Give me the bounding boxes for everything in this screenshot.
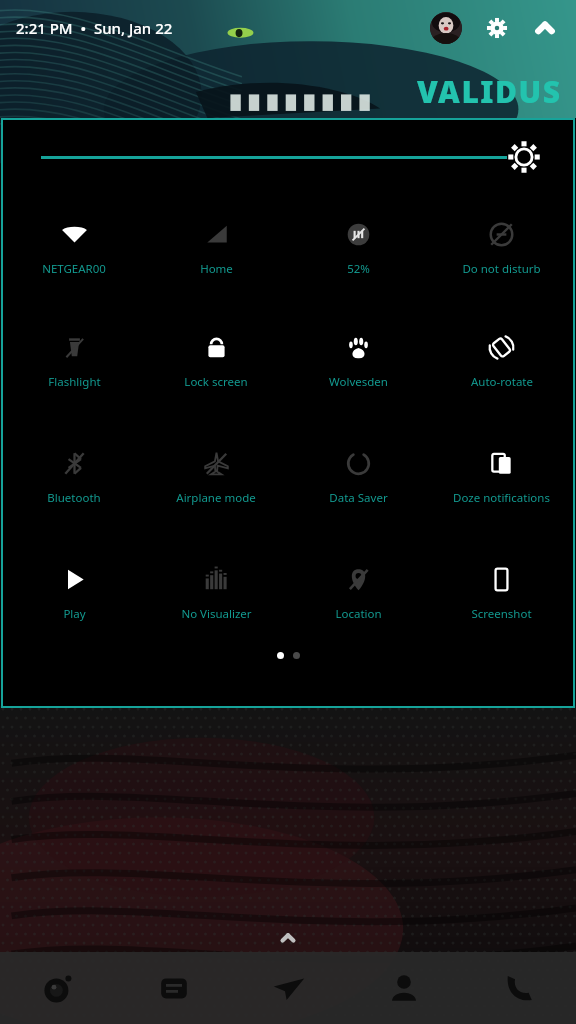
staticText: VALIDUS [417, 71, 562, 112]
button[interactable]: Bluetooth [3, 420, 145, 536]
button[interactable]: Airplane mode [145, 420, 287, 536]
staticText: Doze notifications [453, 490, 550, 506]
button[interactable]: Camera [0, 952, 116, 1024]
button[interactable]: Play [3, 536, 145, 652]
button[interactable]: 52% [287, 194, 430, 304]
staticText: Location [335, 606, 382, 622]
button[interactable]: Telegram [231, 952, 346, 1024]
staticText: Auto-rotate [471, 374, 533, 390]
button[interactable]: Screenshot [430, 536, 573, 652]
staticText: No Visualizer [181, 606, 252, 622]
staticText: 2:21 PM • Sun, Jan 22 [16, 18, 173, 38]
button[interactable]: Collapse [528, 11, 562, 45]
button[interactable]: Open app drawer [0, 924, 576, 952]
staticText: Lock screen [184, 374, 248, 390]
button[interactable]: Data Saver [287, 420, 430, 536]
button[interactable]: Settings [480, 11, 514, 45]
button[interactable]: Messages [116, 952, 231, 1024]
staticText: NETGEAR00 [42, 261, 106, 277]
button[interactable]: Phone [461, 952, 576, 1024]
button[interactable]: No Visualizer [145, 536, 287, 652]
button[interactable]: Brightness [3, 120, 573, 194]
button[interactable]: Wolvesden [287, 304, 430, 420]
button[interactable]: Home [145, 194, 287, 304]
button[interactable]: Do not disturb [430, 194, 573, 304]
button[interactable]: Auto-rotate [430, 304, 573, 420]
staticText: Bluetooth [47, 490, 101, 506]
button[interactable]: Contacts [346, 952, 461, 1024]
staticText: Screenshot [471, 606, 532, 622]
staticText: 52% [347, 261, 370, 277]
button[interactable]: NETGEAR00 [3, 194, 145, 304]
staticText: Flashlight [48, 374, 101, 390]
staticText: Play [63, 606, 86, 622]
staticText: Home [200, 261, 233, 277]
button[interactable]: User profile [430, 12, 462, 44]
button[interactable]: Lock screen [145, 304, 287, 420]
staticText: Do not disturb [462, 261, 541, 277]
staticText: Airplane mode [176, 490, 256, 506]
staticText: Wolvesden [329, 374, 388, 390]
staticText: Data Saver [329, 490, 388, 506]
button[interactable]: Flashlight [3, 304, 145, 420]
button[interactable]: Doze notifications [430, 420, 573, 536]
button[interactable]: Location [287, 536, 430, 652]
